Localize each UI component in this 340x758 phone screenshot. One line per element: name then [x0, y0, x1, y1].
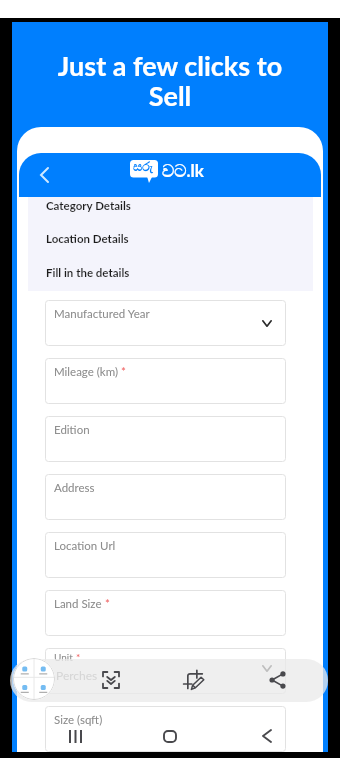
button[interactable]: Location Details [46, 231, 129, 247]
button[interactable]: Home [153, 721, 187, 751]
button[interactable]: Address [45, 474, 286, 532]
button[interactable]: Screenshot preview [13, 658, 55, 700]
staticText: Unit [54, 651, 76, 663]
button[interactable]: Category Details [46, 198, 131, 214]
staticText: Fill in the details [46, 266, 130, 280]
staticText: Location Details [46, 232, 129, 246]
button[interactable]: Recents [58, 721, 92, 751]
staticText: Address [54, 481, 95, 495]
button[interactable]: Size (sqft) [45, 706, 286, 752]
button[interactable]: Back [27, 153, 61, 197]
button[interactable]: Share [260, 663, 294, 697]
button[interactable]: Crop and edit [176, 663, 210, 697]
staticText: Location Url [54, 539, 116, 553]
button[interactable]: Unit [45, 648, 286, 706]
staticText: Perches [56, 668, 98, 682]
staticText: වට.lk [162, 160, 204, 180]
staticText: Category Details [46, 199, 131, 213]
staticText: * [105, 597, 110, 611]
staticText: Size (sqft) [54, 713, 103, 727]
staticText: * [121, 365, 126, 379]
staticText: * [76, 651, 81, 663]
staticText: Mileage (km) [54, 365, 121, 379]
button[interactable]: Location Url [45, 532, 286, 590]
staticText: Edition [54, 423, 90, 437]
button[interactable]: Fill in the details [46, 265, 130, 281]
button[interactable]: Manufactured Year [45, 300, 286, 358]
button[interactable]: Land Size [45, 590, 286, 648]
button[interactable]: Mileage (km) [45, 358, 286, 416]
button[interactable]: Capture more [94, 663, 128, 697]
button[interactable]: Edition [45, 416, 286, 474]
staticText: Land Size [54, 597, 105, 611]
staticText: Manufactured Year [54, 307, 150, 321]
button[interactable]: Back [250, 721, 284, 751]
staticText: සරු [133, 161, 154, 174]
staticText: Just a few clicks to Sell [12, 49, 328, 111]
